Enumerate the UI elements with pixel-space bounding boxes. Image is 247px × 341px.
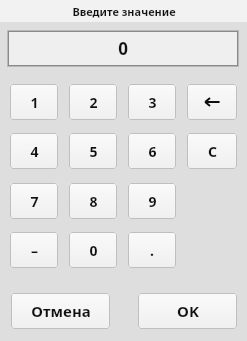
button[interactable]: 4 [10,133,58,169]
staticText: – [31,241,38,260]
staticText: 2 [89,93,98,112]
button[interactable]: 2 [69,84,117,120]
button[interactable]: OK [138,293,237,329]
button[interactable]: 5 [69,133,117,169]
staticText: 3 [148,93,157,112]
staticText: 0 [89,241,98,260]
staticText: 7 [30,192,39,211]
staticText: 9 [148,192,157,211]
staticText: C [208,142,217,161]
staticText: 0 [118,37,128,60]
button[interactable]: Отмена [11,293,110,329]
staticText: OK [177,301,199,321]
button[interactable]: 0 [69,232,117,268]
button[interactable]: 6 [128,133,176,169]
button[interactable]: 7 [10,183,58,219]
button[interactable]: 9 [128,183,176,219]
button[interactable]: 3 [128,84,176,120]
staticText: . [150,241,154,260]
staticText: Отмена [31,301,91,321]
staticText: Введите значение [72,4,176,19]
button[interactable]: C [187,133,237,169]
staticText: 5 [89,142,98,161]
staticText: 6 [148,142,157,161]
staticText: 8 [89,192,98,211]
button[interactable]: 8 [69,183,117,219]
staticText: 1 [30,93,39,112]
staticText: 4 [30,142,39,161]
button[interactable]: 1 [10,84,58,120]
button[interactable]: . [128,232,176,268]
button[interactable]: Backspace [187,84,237,120]
button[interactable]: – [10,232,58,268]
